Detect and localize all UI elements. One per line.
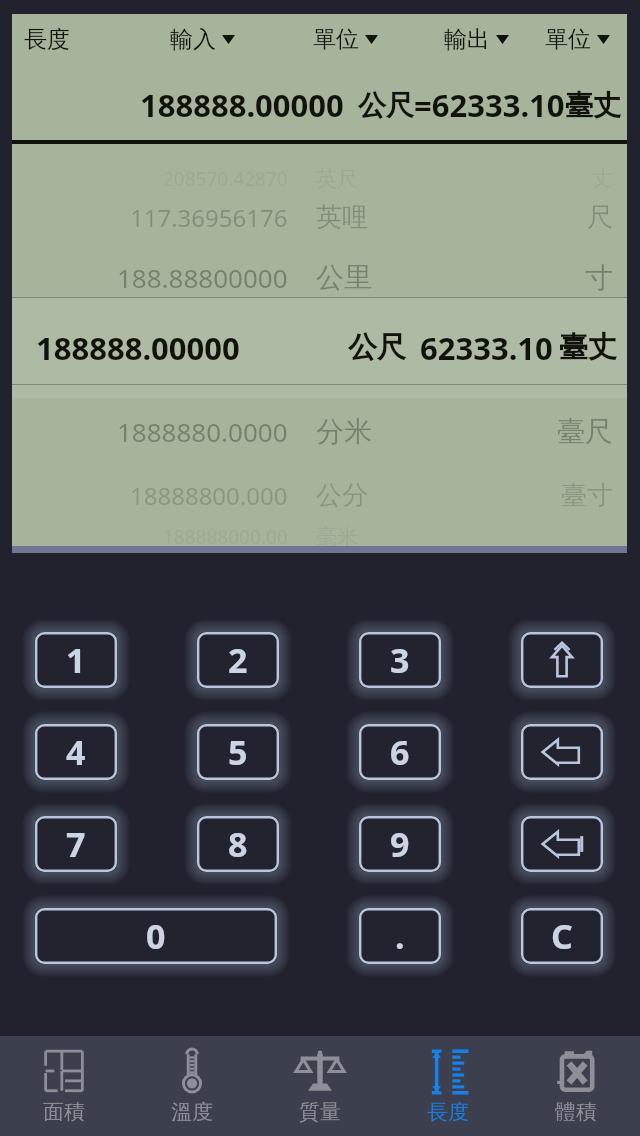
staticText: 毫米: [316, 524, 358, 550]
button[interactable]: 117.36956176: [12, 200, 627, 234]
button[interactable]: 溫度: [128, 1036, 256, 1136]
button[interactable]: 2: [197, 632, 279, 688]
staticText: 單位: [313, 25, 359, 54]
button[interactable]: 單位: [537, 19, 618, 60]
button[interactable]: 188888000.00: [12, 520, 627, 554]
staticText: 輸入: [170, 25, 216, 54]
button[interactable]: 單位: [305, 19, 386, 60]
button[interactable]: 面積: [0, 1036, 128, 1136]
button[interactable]: Delete: [521, 816, 603, 872]
staticText: 1: [66, 637, 86, 683]
button[interactable]: 質量: [256, 1036, 384, 1136]
button[interactable]: 輸出: [436, 19, 517, 60]
staticText: =62333.10: [414, 84, 565, 126]
button[interactable]: 4: [35, 724, 117, 780]
staticText: 英尺: [316, 166, 358, 192]
button[interactable]: 6: [359, 724, 441, 780]
button[interactable]: 8: [197, 816, 279, 872]
staticText: 4: [66, 729, 86, 775]
staticText: 188888.00000: [36, 327, 240, 369]
button[interactable]: C: [521, 908, 603, 964]
staticText: 公里: [316, 260, 372, 294]
staticText: 尺: [587, 201, 613, 234]
button[interactable]: Backspace: [521, 724, 603, 780]
staticText: 188888.00000: [140, 84, 344, 126]
button[interactable]: 188.88800000: [12, 260, 627, 294]
staticText: 臺寸: [561, 479, 613, 512]
staticText: 臺尺: [557, 414, 613, 448]
button[interactable]: 18888800.000: [12, 478, 627, 512]
button[interactable]: 5: [197, 724, 279, 780]
staticText: 6: [390, 729, 410, 775]
button[interactable]: 7: [35, 816, 117, 872]
button[interactable]: 0: [35, 908, 277, 964]
staticText: 長度: [427, 1099, 469, 1125]
staticText: 0: [146, 913, 166, 959]
staticText: 臺丈: [565, 88, 621, 123]
button[interactable]: 3: [359, 632, 441, 688]
button[interactable]: 體積: [512, 1036, 640, 1136]
staticText: 溫度: [171, 1099, 213, 1125]
staticText: 1888880.0000: [117, 414, 288, 448]
staticText: 丈: [592, 166, 613, 192]
staticText: 5: [228, 729, 248, 775]
button[interactable]: 長度: [16, 19, 78, 60]
staticText: 62333.10: [420, 327, 553, 369]
staticText: 單位: [545, 25, 591, 54]
button[interactable]: 188888.00000: [12, 297, 627, 398]
staticText: 公尺: [348, 329, 406, 366]
staticText: 公分: [316, 479, 368, 512]
staticText: 臺丈: [559, 329, 617, 366]
button[interactable]: Shift: [521, 632, 603, 688]
staticText: 寸: [585, 260, 613, 294]
staticText: 117.36956176: [130, 201, 288, 234]
staticText: 長度: [24, 25, 70, 54]
button[interactable]: 長度: [384, 1036, 512, 1136]
button[interactable]: 9: [359, 816, 441, 872]
staticText: 公尺: [358, 88, 414, 123]
staticText: 18888800.000: [130, 479, 288, 512]
staticText: .: [395, 913, 405, 959]
staticText: 188888000.00: [163, 524, 288, 550]
staticText: 體積: [555, 1099, 597, 1125]
staticText: 7: [66, 821, 86, 867]
staticText: 188.88800000: [117, 260, 288, 294]
button[interactable]: 1: [35, 632, 117, 688]
staticText: C: [551, 913, 573, 959]
staticText: 分米: [316, 414, 372, 448]
staticText: 輸出: [444, 25, 490, 54]
staticText: 9: [390, 821, 410, 867]
staticText: 質量: [299, 1099, 341, 1125]
button[interactable]: 1888880.0000: [12, 414, 627, 448]
staticText: 8: [228, 821, 248, 867]
staticText: 英哩: [316, 201, 368, 234]
button[interactable]: .: [359, 908, 441, 964]
staticText: 2: [228, 637, 248, 683]
staticText: 208570.42870: [163, 166, 288, 192]
button[interactable]: 輸入: [162, 19, 243, 60]
staticText: 面積: [43, 1099, 85, 1125]
staticText: 3: [390, 637, 410, 683]
